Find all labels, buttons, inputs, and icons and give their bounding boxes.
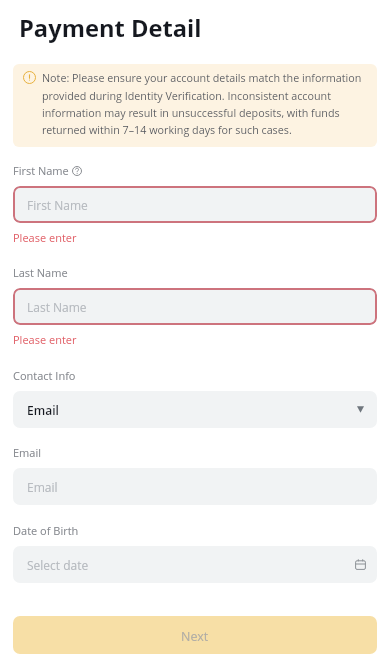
- staticText: Date of Birth: [13, 523, 79, 538]
- staticText: Please enter: [13, 332, 77, 347]
- staticText: Please enter: [13, 230, 77, 245]
- staticText: First Name: [27, 197, 88, 213]
- staticText: Last Name: [27, 299, 87, 315]
- staticText: Payment Detail: [19, 12, 202, 44]
- other: Open contact type menu: [355, 404, 366, 415]
- other: Pick date: [355, 559, 366, 570]
- button[interactable]: Email: [13, 468, 377, 505]
- staticText: Select date: [27, 557, 89, 573]
- staticText: Next: [181, 628, 209, 645]
- button[interactable]: Email: [13, 391, 377, 428]
- button[interactable]: Select date: [13, 546, 377, 583]
- staticText: Email: [27, 479, 58, 495]
- button[interactable]: Last Name: [13, 288, 377, 325]
- staticText: Contact Info: [13, 368, 76, 383]
- staticText: Email: [13, 445, 42, 460]
- button[interactable]: First Name: [13, 186, 377, 223]
- staticText: Email: [27, 402, 59, 418]
- staticText: Note: Please ensure your account details…: [42, 71, 365, 137]
- button[interactable]: Next: [13, 616, 377, 654]
- staticText: Last Name: [13, 265, 68, 280]
- staticText: First Name: [13, 163, 69, 178]
